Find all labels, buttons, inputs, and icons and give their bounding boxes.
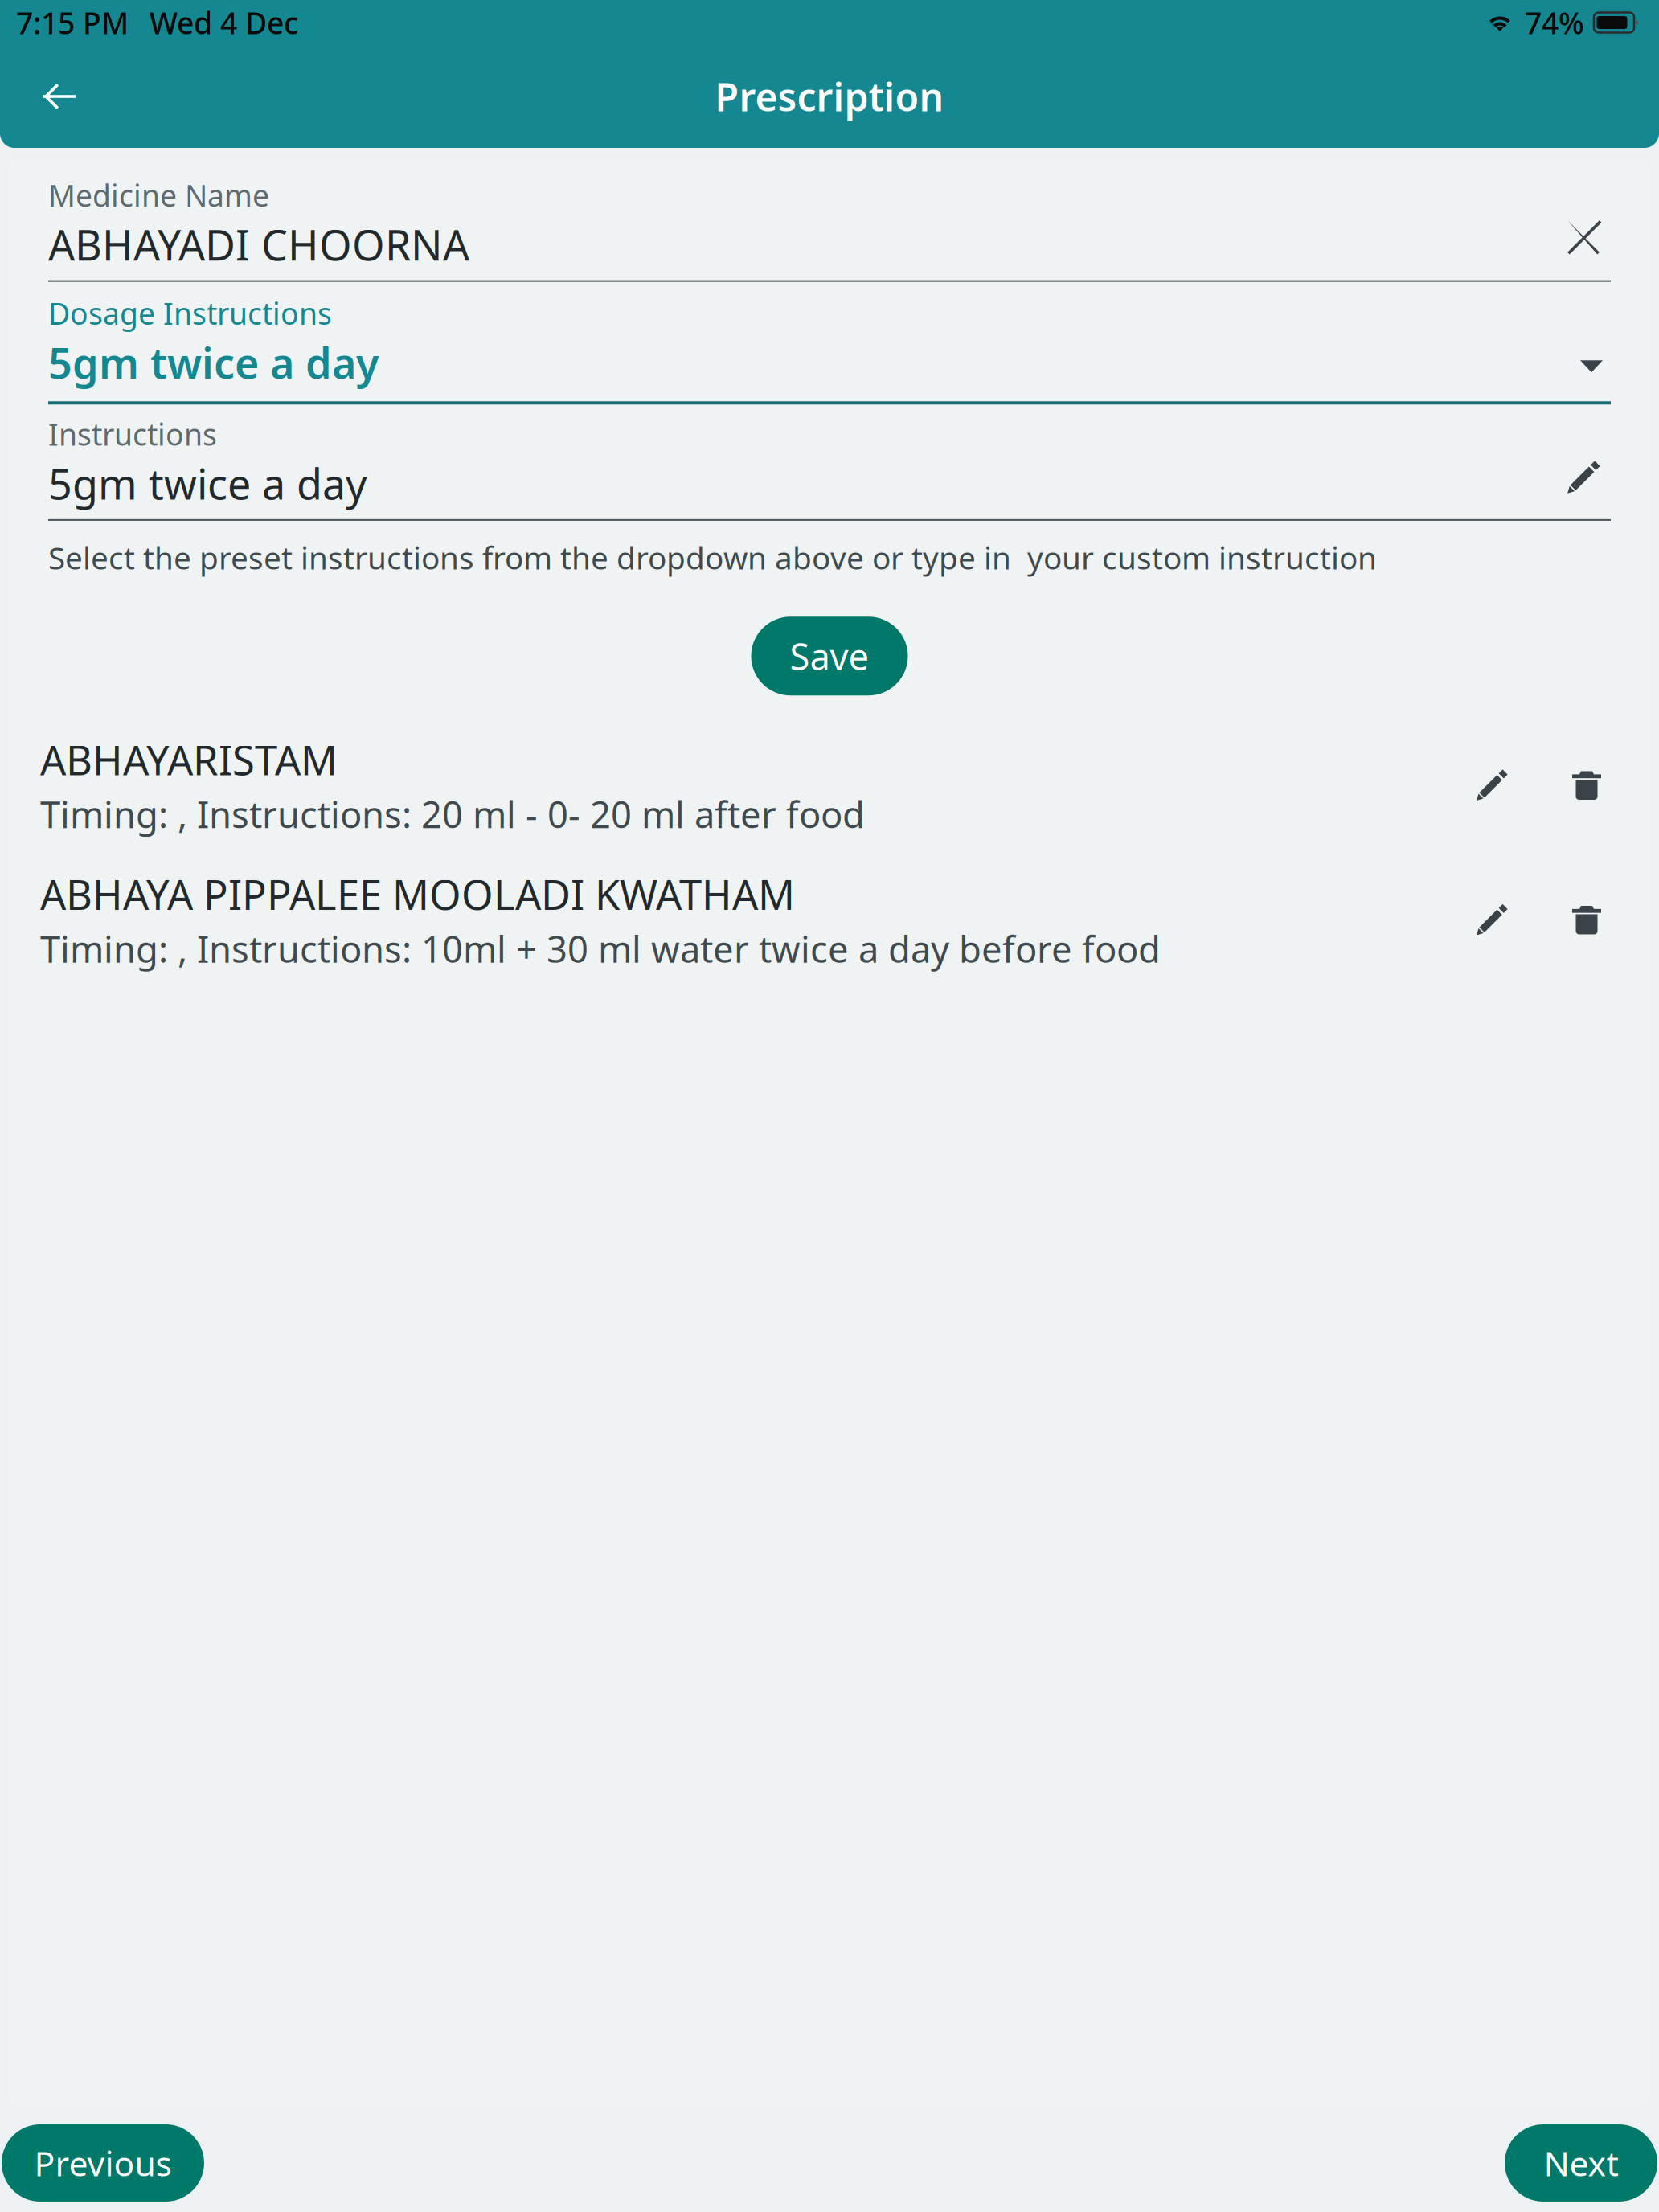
staticText: Next [1544,2140,1618,2186]
staticText: Dosage Instructions [48,293,332,333]
button[interactable]: Edit instructions [1550,444,1617,511]
staticText: ABHAYARISTAM [40,732,338,786]
staticText: Prescription [715,71,944,122]
button[interactable]: Delete ABHAYA PIPPALEE MOOLADI KWATHAM [1551,885,1622,955]
button[interactable]: Save [751,617,908,695]
staticText: 5gm twice a day [48,335,379,390]
staticText: ABHAYA PIPPALEE MOOLADI KWATHAM [40,867,795,921]
button[interactable]: Edit ABHAYARISTAM [1456,750,1527,821]
staticText: Wed 4 Dec [150,3,298,42]
staticText: Timing: , Instructions: 10ml + 30 ml wat… [40,924,1161,973]
staticText: Timing: , Instructions: 20 ml - 0- 20 ml… [40,790,865,838]
staticText: Save [790,632,869,680]
staticText: 7:15 PM [16,3,129,42]
staticText: Previous [34,2140,172,2186]
button[interactable]: Next [1505,2124,1657,2202]
button[interactable]: Edit ABHAYA PIPPALEE MOOLADI KWATHAM [1456,885,1527,955]
staticText: Select the preset instructions from the … [48,537,1377,578]
staticText: 5gm twice a day [48,456,367,511]
staticText: Instructions [48,414,217,454]
staticText: 74% [1525,3,1584,42]
staticText: Medicine Name [48,175,269,215]
button[interactable]: Delete ABHAYARISTAM [1551,750,1622,821]
button[interactable]: Back [23,59,96,133]
button[interactable]: Clear medicine name [1550,205,1617,272]
button[interactable]: Previous [2,2124,204,2202]
button[interactable]: Dosage Instructions [8,282,1651,404]
staticText: ABHAYADI CHOORNA [48,217,469,272]
